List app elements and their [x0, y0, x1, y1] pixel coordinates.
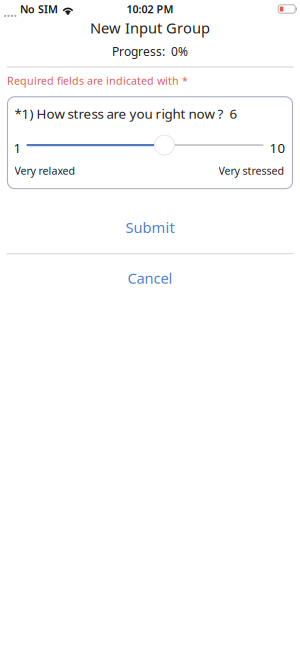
button[interactable]: Submit	[0, 189, 300, 253]
staticText: Submit	[125, 218, 174, 237]
staticText: Cancel	[127, 268, 172, 288]
staticText: 10:02 PM	[126, 2, 173, 16]
staticText: 10	[269, 139, 285, 157]
staticText: New Input Group	[90, 18, 210, 37]
staticText: Progress: 0%	[112, 43, 188, 59]
staticText: Very stressed	[218, 163, 284, 178]
staticText: 1	[13, 139, 21, 157]
button[interactable]: Cancel	[0, 254, 300, 306]
staticText: Very relaxed	[14, 163, 75, 178]
staticText: Required fields are indicated with *	[7, 74, 188, 88]
staticText: No SIM	[20, 2, 58, 16]
staticText: *1) How stress are you right now ? 6	[14, 105, 237, 122]
